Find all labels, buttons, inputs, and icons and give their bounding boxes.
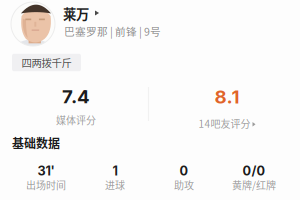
staticText: 黄牌/红牌 <box>232 178 276 192</box>
staticText: 14吧友评分 <box>198 116 250 131</box>
staticText: 8.1 <box>214 85 239 108</box>
staticText: 巴塞罗那 | 前锋 | 9号 <box>64 23 161 39</box>
staticText: 助攻 <box>174 178 194 192</box>
staticText: 0/0 <box>242 163 265 178</box>
staticText: 媒体评分 <box>56 113 96 127</box>
staticText: 莱万 <box>63 4 89 23</box>
button[interactable]: 莱万 <box>63 4 101 23</box>
staticText: 出场时间 <box>26 178 66 192</box>
staticText: 四两拨千斤 <box>21 55 71 70</box>
button[interactable]: 8.1 <box>198 85 255 131</box>
staticText: 7.4 <box>62 85 90 108</box>
staticText: 基础数据 <box>12 134 60 151</box>
staticText: 进球 <box>105 178 125 192</box>
staticText: 1 <box>112 163 117 178</box>
staticText: 31' <box>37 163 54 178</box>
staticText: 0 <box>179 163 188 178</box>
button[interactable]: 球员头像 <box>11 2 55 46</box>
